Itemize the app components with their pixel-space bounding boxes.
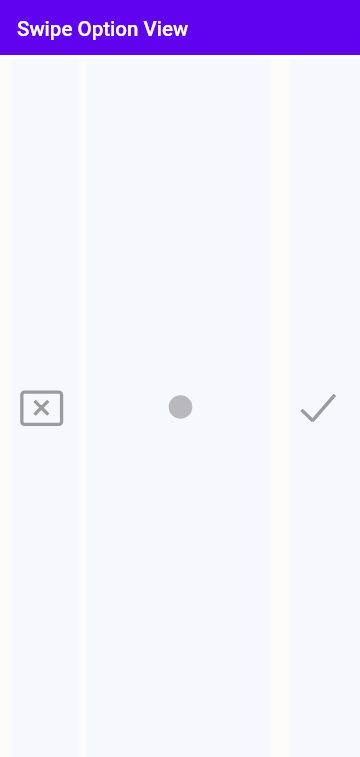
button[interactable]: Accept	[276, 378, 360, 434]
staticText: Swipe Option View	[17, 17, 189, 41]
button[interactable]: Reject	[0, 378, 84, 434]
button[interactable]: Current option	[138, 378, 222, 434]
